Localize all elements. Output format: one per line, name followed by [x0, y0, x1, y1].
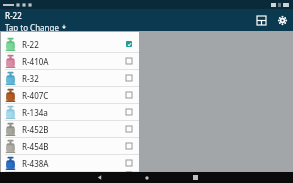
button[interactable]: R-438A [1, 155, 139, 171]
button[interactable]: Select R-32 [124, 73, 134, 83]
button[interactable]: Select R-454B [124, 141, 134, 151]
button[interactable]: Select R-134a [124, 107, 134, 117]
staticText: R-134a [22, 107, 124, 118]
button[interactable]: Calculator [254, 13, 268, 27]
staticText: Tap to Change [5, 22, 59, 31]
staticText: R-454B [22, 141, 124, 152]
button[interactable]: Select R-438A [124, 158, 134, 168]
button[interactable]: Back [84, 172, 114, 183]
button[interactable]: Select R-452B [124, 124, 134, 134]
button[interactable]: R-32 [1, 70, 139, 86]
staticText: R-22 [22, 39, 124, 50]
button[interactable]: R-22 [1, 36, 139, 52]
button[interactable]: Select R-407C [124, 90, 134, 100]
button[interactable]: R-452B [1, 121, 139, 137]
button[interactable]: Select R-410A [124, 56, 134, 66]
button[interactable]: R-134a [1, 104, 139, 120]
button[interactable]: R-410A [1, 53, 139, 69]
staticText: R-438A [22, 158, 124, 169]
button[interactable]: Recents [180, 172, 210, 183]
staticText: R-410A [22, 56, 124, 67]
button[interactable]: R-407C [1, 87, 139, 103]
button[interactable]: R-454B [1, 138, 139, 154]
staticText: R-32 [22, 73, 124, 84]
button[interactable]: Home [132, 172, 162, 183]
button[interactable]: R-22 [0, 9, 67, 31]
staticText: R-407C [22, 90, 124, 101]
staticText: R-22 [5, 10, 22, 21]
staticText: R-452B [22, 124, 124, 135]
button[interactable]: Settings [275, 13, 289, 27]
button[interactable]: Select R-22 [124, 39, 134, 49]
